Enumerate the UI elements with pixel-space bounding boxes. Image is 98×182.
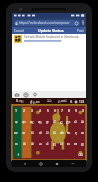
button[interactable]: ල [51, 138, 58, 149]
button[interactable]: ඔ [79, 116, 86, 127]
staticText: ආ [22, 120, 26, 124]
button[interactable]: Cancel [12, 27, 26, 34]
button[interactable]: 5 [44, 105, 51, 116]
staticText: ක [14, 131, 18, 135]
button[interactable]: ද [72, 127, 79, 138]
button[interactable]: හ [72, 138, 79, 149]
staticText: ළ [81, 142, 84, 146]
button[interactable]: Back [22, 161, 28, 167]
staticText: 9 [75, 108, 77, 113]
button[interactable]: ⇧ [12, 149, 24, 160]
button[interactable]: Reload [74, 21, 79, 26]
button[interactable]: ත [65, 127, 72, 138]
button[interactable]: සිංහල [13, 98, 26, 105]
button[interactable]: ළ [79, 138, 86, 149]
button[interactable]: බ [20, 138, 28, 149]
button[interactable]: More options [80, 18, 86, 27]
button[interactable]: Address bar [14, 20, 80, 26]
button[interactable]: ට [44, 127, 51, 138]
staticText: 8 [68, 108, 70, 113]
staticText: ව [60, 142, 63, 146]
button[interactable]: ලංකාව [55, 98, 70, 105]
staticText: ස [67, 142, 70, 146]
button[interactable]: ර [44, 138, 51, 149]
button[interactable]: ඌ [65, 116, 72, 127]
button[interactable]: න [79, 127, 86, 138]
staticText: න [81, 131, 85, 135]
button[interactable] [66, 149, 74, 160]
staticText: ණ [60, 131, 64, 135]
button[interactable]: 6 [51, 105, 58, 116]
button[interactable]: 1 [12, 105, 20, 116]
staticText: ඊ [53, 120, 56, 124]
button[interactable]: Post [75, 27, 86, 34]
button[interactable]: මම [44, 98, 55, 105]
button[interactable]: Sticker [23, 92, 29, 98]
staticText: Cancel [14, 29, 24, 33]
button[interactable]: ප [12, 138, 20, 149]
staticText: උ [60, 120, 63, 124]
button[interactable]: Recents [54, 161, 60, 167]
staticText: ලංකාව [58, 100, 67, 103]
staticText: Update Status [38, 28, 64, 33]
button[interactable]: 0 [79, 105, 86, 116]
button[interactable]: ⌫ [74, 149, 86, 160]
staticText: Sinhala Mobile Keyboard ⊡ Notebook - [24, 35, 81, 39]
staticText: https://m.facebook.com/composer [19, 21, 74, 25]
button[interactable]: 8 [65, 105, 72, 116]
staticText: ය [39, 142, 42, 146]
button[interactable]: ශ්‍රී ලංකා [26, 98, 44, 105]
button[interactable]: උ [58, 116, 65, 127]
staticText: සිං [70, 101, 73, 104]
button[interactable]: ජ [36, 127, 44, 138]
button[interactable]: ක [12, 127, 20, 138]
staticText: ඩ [53, 131, 56, 135]
button[interactable] [24, 149, 32, 160]
staticText: ⇧ [17, 153, 20, 157]
button[interactable]: එ [72, 116, 79, 127]
button[interactable]: ග [20, 127, 28, 138]
button[interactable] [32, 149, 66, 160]
staticText: 4 [39, 108, 41, 113]
button[interactable]: ච [28, 127, 36, 138]
staticText: ට [46, 131, 49, 135]
staticText: හ [74, 142, 78, 146]
button[interactable]: ඇ [28, 116, 36, 127]
staticText: Post [77, 29, 84, 33]
staticText: ඇ [30, 120, 34, 124]
button[interactable]: ඉ [44, 116, 51, 127]
button[interactable]: 4 [36, 105, 44, 116]
staticText: අ [15, 120, 18, 124]
button[interactable]: Hide keyboard [70, 161, 76, 167]
button[interactable]: ය [36, 138, 44, 149]
button[interactable]: අ [12, 116, 20, 127]
button[interactable]: ණ [58, 127, 65, 138]
staticText: බ [23, 142, 26, 146]
staticText: 6 [54, 108, 56, 113]
staticText: ත [67, 131, 71, 135]
staticText: ඈ [38, 120, 42, 124]
button[interactable]: 9 [72, 105, 79, 116]
button[interactable]: Keyboard settings [70, 100, 85, 104]
staticText: ල [53, 142, 56, 146]
button[interactable]: 7 [58, 105, 65, 116]
button[interactable]: 3 [28, 105, 36, 116]
button[interactable]: Add photo [14, 92, 20, 98]
button[interactable]: ස [65, 138, 72, 149]
button[interactable]: ව [58, 138, 65, 149]
button[interactable]: ඩ [51, 127, 58, 138]
button[interactable]: ඈ [36, 116, 44, 127]
button[interactable]: ඊ [51, 116, 58, 127]
button[interactable]: Check in [32, 92, 38, 98]
button[interactable]: Home [38, 161, 44, 167]
staticText: ඉ [46, 120, 49, 124]
staticText: ඔ [81, 120, 84, 124]
staticText: ⌫ [78, 153, 83, 157]
staticText: ච [31, 131, 34, 135]
staticText: 123 [79, 100, 85, 104]
button[interactable]: ම [28, 138, 36, 149]
button[interactable]: ආ [20, 116, 28, 127]
staticText: සිංහල [16, 100, 24, 103]
staticText: 3 [31, 108, 33, 113]
button[interactable]: 2 [20, 105, 28, 116]
